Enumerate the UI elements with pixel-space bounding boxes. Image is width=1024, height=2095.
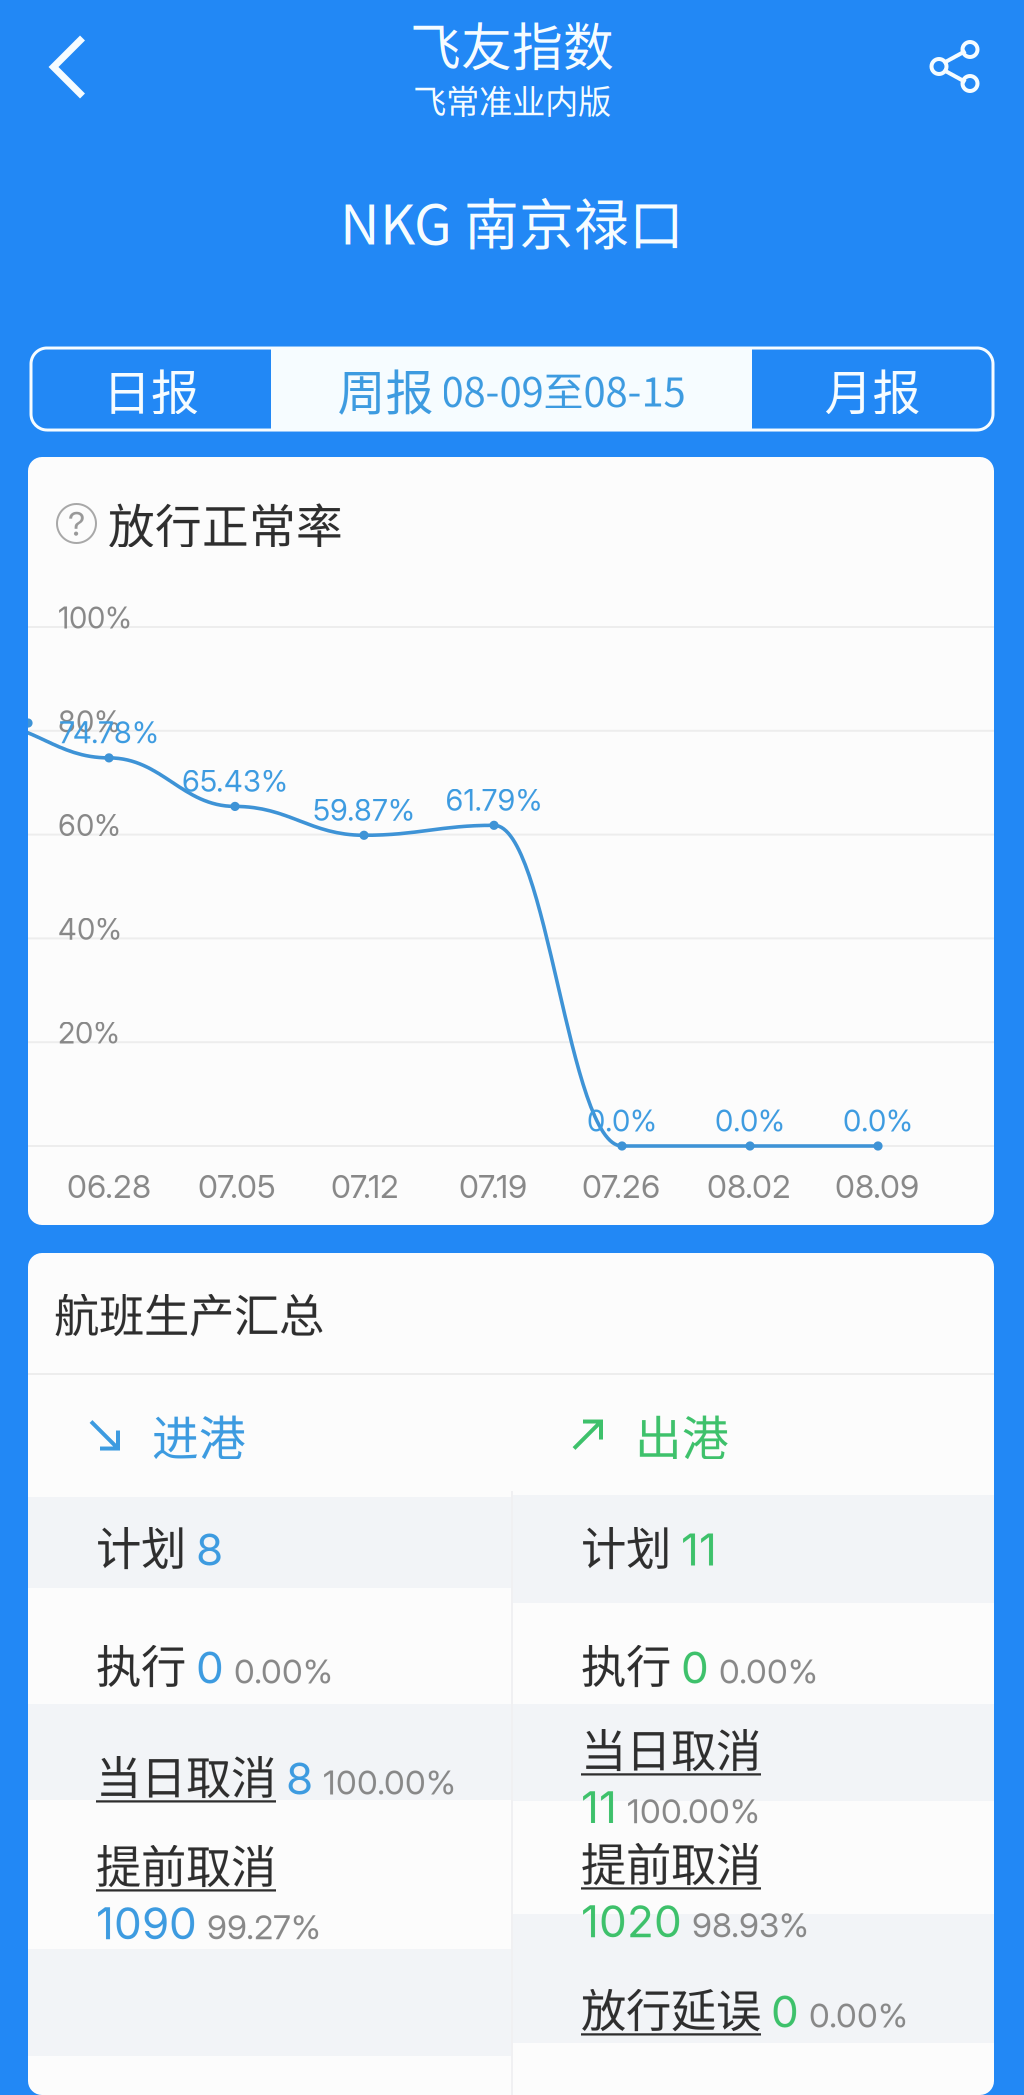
staticText: 08.09 bbox=[835, 1167, 919, 1206]
staticText: 40% bbox=[58, 911, 122, 947]
button[interactable]: 进港 bbox=[28, 1375, 511, 1495]
staticText: 08.02 bbox=[707, 1167, 791, 1206]
staticText: 当日取消 bbox=[581, 1715, 761, 1781]
button[interactable]: Back bbox=[13, 12, 123, 122]
staticText: 出港 bbox=[635, 1401, 729, 1469]
staticText: 周报 bbox=[337, 354, 433, 424]
staticText: 06.28 bbox=[67, 1167, 151, 1206]
staticText: 1090 bbox=[96, 1897, 197, 1950]
staticText: 0.00% bbox=[719, 1651, 818, 1692]
button[interactable]: 出港 bbox=[511, 1375, 994, 1495]
staticText: 59.87% bbox=[313, 792, 415, 828]
staticText: 07.19 bbox=[459, 1167, 527, 1206]
staticText: 进港 bbox=[152, 1401, 246, 1469]
staticText: 100.00% bbox=[627, 1791, 760, 1831]
staticText: 99.27% bbox=[207, 1907, 321, 1947]
button[interactable]: Share bbox=[900, 12, 1010, 122]
staticText: 100% bbox=[58, 600, 132, 635]
staticText: 07.05 bbox=[198, 1167, 276, 1206]
staticText: 放行正常率 bbox=[108, 489, 343, 557]
staticText: 60% bbox=[58, 808, 121, 843]
staticText: 0.00% bbox=[809, 1995, 908, 2036]
staticText: 65.43% bbox=[182, 763, 288, 799]
staticText: 飞常准业内版 bbox=[413, 75, 611, 123]
staticText: 11 bbox=[581, 1781, 617, 1834]
staticText: 月报 bbox=[824, 354, 920, 424]
staticText: ? bbox=[68, 503, 85, 544]
staticText: 0.0% bbox=[587, 1103, 657, 1138]
staticText: 100.00% bbox=[323, 1762, 456, 1803]
staticText: NKG 南京禄口 bbox=[340, 181, 684, 260]
staticText: 07.12 bbox=[331, 1167, 399, 1206]
staticText: 计划 bbox=[96, 1513, 186, 1579]
staticText: 提前取消 bbox=[96, 1831, 276, 1897]
staticText: 20% bbox=[58, 1015, 120, 1051]
button[interactable]: 周报 bbox=[271, 348, 752, 430]
staticText: 08-09至08-15 bbox=[441, 360, 685, 418]
staticText: 计划 bbox=[581, 1513, 671, 1579]
staticText: 98.93% bbox=[692, 1905, 809, 1945]
button[interactable]: 日报 bbox=[31, 348, 271, 430]
staticText: 0 bbox=[771, 1985, 799, 2038]
staticText: 提前取消 bbox=[581, 1829, 761, 1895]
staticText: 飞友指数 bbox=[410, 7, 614, 80]
staticText: 74.78% bbox=[59, 715, 159, 750]
staticText: 1020 bbox=[581, 1895, 682, 1948]
staticText: 执行 bbox=[96, 1631, 186, 1697]
staticText: 8 bbox=[196, 1523, 223, 1576]
staticText: 航班生产汇总 bbox=[54, 1280, 324, 1346]
staticText: 11 bbox=[681, 1523, 717, 1576]
staticText: 0.00% bbox=[234, 1651, 333, 1692]
staticText: 当日取消 bbox=[96, 1742, 276, 1808]
staticText: 8 bbox=[286, 1752, 313, 1805]
staticText: 0.0% bbox=[715, 1103, 785, 1138]
staticText: 日报 bbox=[103, 354, 199, 424]
staticText: 61.79% bbox=[445, 782, 542, 818]
staticText: 07.26 bbox=[582, 1167, 660, 1206]
button[interactable]: 月报 bbox=[752, 348, 993, 430]
staticText: 0 bbox=[196, 1641, 224, 1694]
staticText: 0.0% bbox=[843, 1103, 913, 1138]
staticText: 0 bbox=[681, 1641, 709, 1694]
staticText: 放行延误 bbox=[581, 1975, 761, 2041]
staticText: 执行 bbox=[581, 1631, 671, 1697]
staticText: 80% bbox=[58, 704, 121, 739]
